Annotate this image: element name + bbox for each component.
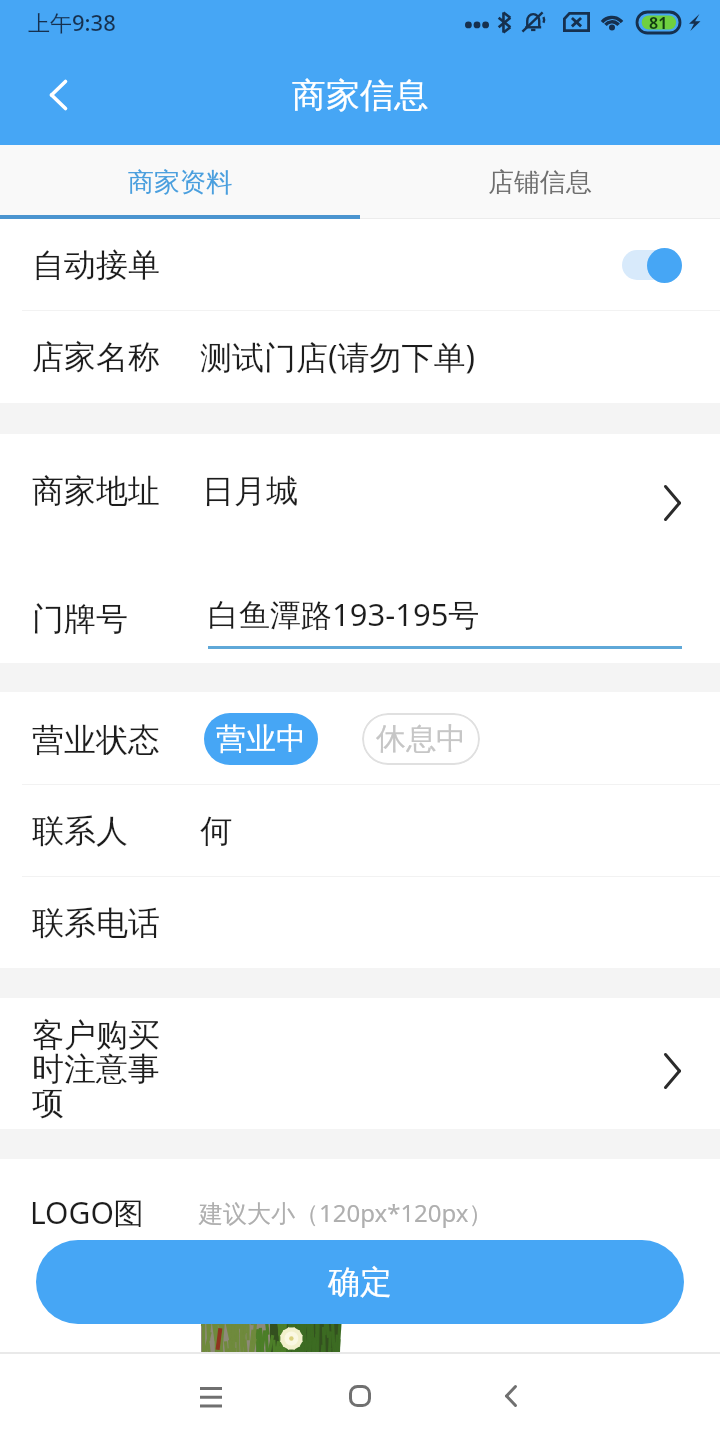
- staticText: 门牌号: [32, 599, 128, 639]
- staticText: 商家地址: [32, 471, 160, 511]
- staticText: 客户购买: [32, 1015, 160, 1055]
- button[interactable]: 商家资料: [0, 145, 360, 219]
- button[interactable]: Auto accept orders: [622, 247, 682, 283]
- staticText: 81: [649, 12, 668, 33]
- staticText: 商家信息: [292, 74, 428, 117]
- staticText: 确定: [328, 1262, 392, 1302]
- staticText: 店铺信息: [488, 166, 592, 199]
- staticText: 联系电话: [32, 903, 160, 943]
- staticText: 建议大小（120px*120px）: [199, 1196, 493, 1229]
- button[interactable]: Home: [320, 1356, 400, 1436]
- staticText: 自动接单: [32, 245, 160, 285]
- staticText: 测试门店(请勿下单): [200, 335, 476, 379]
- staticText: LOGO图: [30, 1192, 144, 1233]
- staticText: 白鱼潭路193-195号: [208, 593, 480, 635]
- button[interactable]: Back: [471, 1356, 551, 1436]
- button[interactable]: Back: [24, 61, 92, 129]
- button[interactable]: 确定: [36, 1240, 684, 1324]
- staticText: 项: [32, 1083, 64, 1123]
- staticText: 日月城: [202, 471, 298, 511]
- staticText: 店家名称: [32, 337, 160, 377]
- staticText: 营业状态: [32, 720, 160, 760]
- staticText: 休息中: [376, 720, 466, 758]
- button[interactable]: 营业中: [204, 713, 318, 765]
- button[interactable]: 休息中: [362, 713, 480, 765]
- staticText: 上午9:38: [28, 7, 116, 37]
- staticText: 营业中: [216, 720, 306, 758]
- button[interactable]: 店铺信息: [360, 145, 720, 219]
- staticText: 何: [200, 811, 232, 851]
- staticText: 商家资料: [128, 166, 232, 199]
- staticText: 联系人: [32, 811, 128, 851]
- staticText: 时注意事: [32, 1049, 160, 1089]
- button[interactable]: Recents: [171, 1356, 251, 1436]
